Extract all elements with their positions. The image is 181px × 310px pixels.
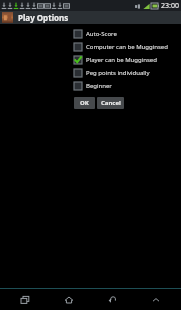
button[interactable]: Cancel [97,97,124,109]
button[interactable]: Unchecked [0,66,181,79]
button[interactable]: Hide navigation [138,289,174,310]
button[interactable]: Checked [74,56,82,64]
button[interactable]: Unchecked [0,27,181,40]
staticText: Auto-Score [86,30,117,38]
button[interactable]: Unchecked [0,79,181,92]
button[interactable]: Unchecked [0,40,181,53]
button[interactable]: Unchecked [74,30,82,38]
staticText: OK [80,99,89,107]
button[interactable]: Unchecked [74,82,82,90]
button[interactable]: Recent apps [7,289,43,310]
button[interactable]: Home [51,289,87,310]
staticText: Peg points individually [86,69,150,77]
staticText: Play Options [18,12,69,23]
button[interactable]: Unchecked [74,43,82,51]
staticText: Cancel [101,99,121,107]
staticText: Computer can be Mugginsed [86,43,168,51]
button[interactable]: Checked [0,53,181,66]
staticText: Beginner [86,82,112,90]
button[interactable]: OK [74,97,95,109]
staticText: Player can be Mugginsed [86,56,157,64]
button[interactable]: Back [94,289,130,310]
button[interactable]: Unchecked [74,69,82,77]
staticText: 23:00 [161,1,179,11]
